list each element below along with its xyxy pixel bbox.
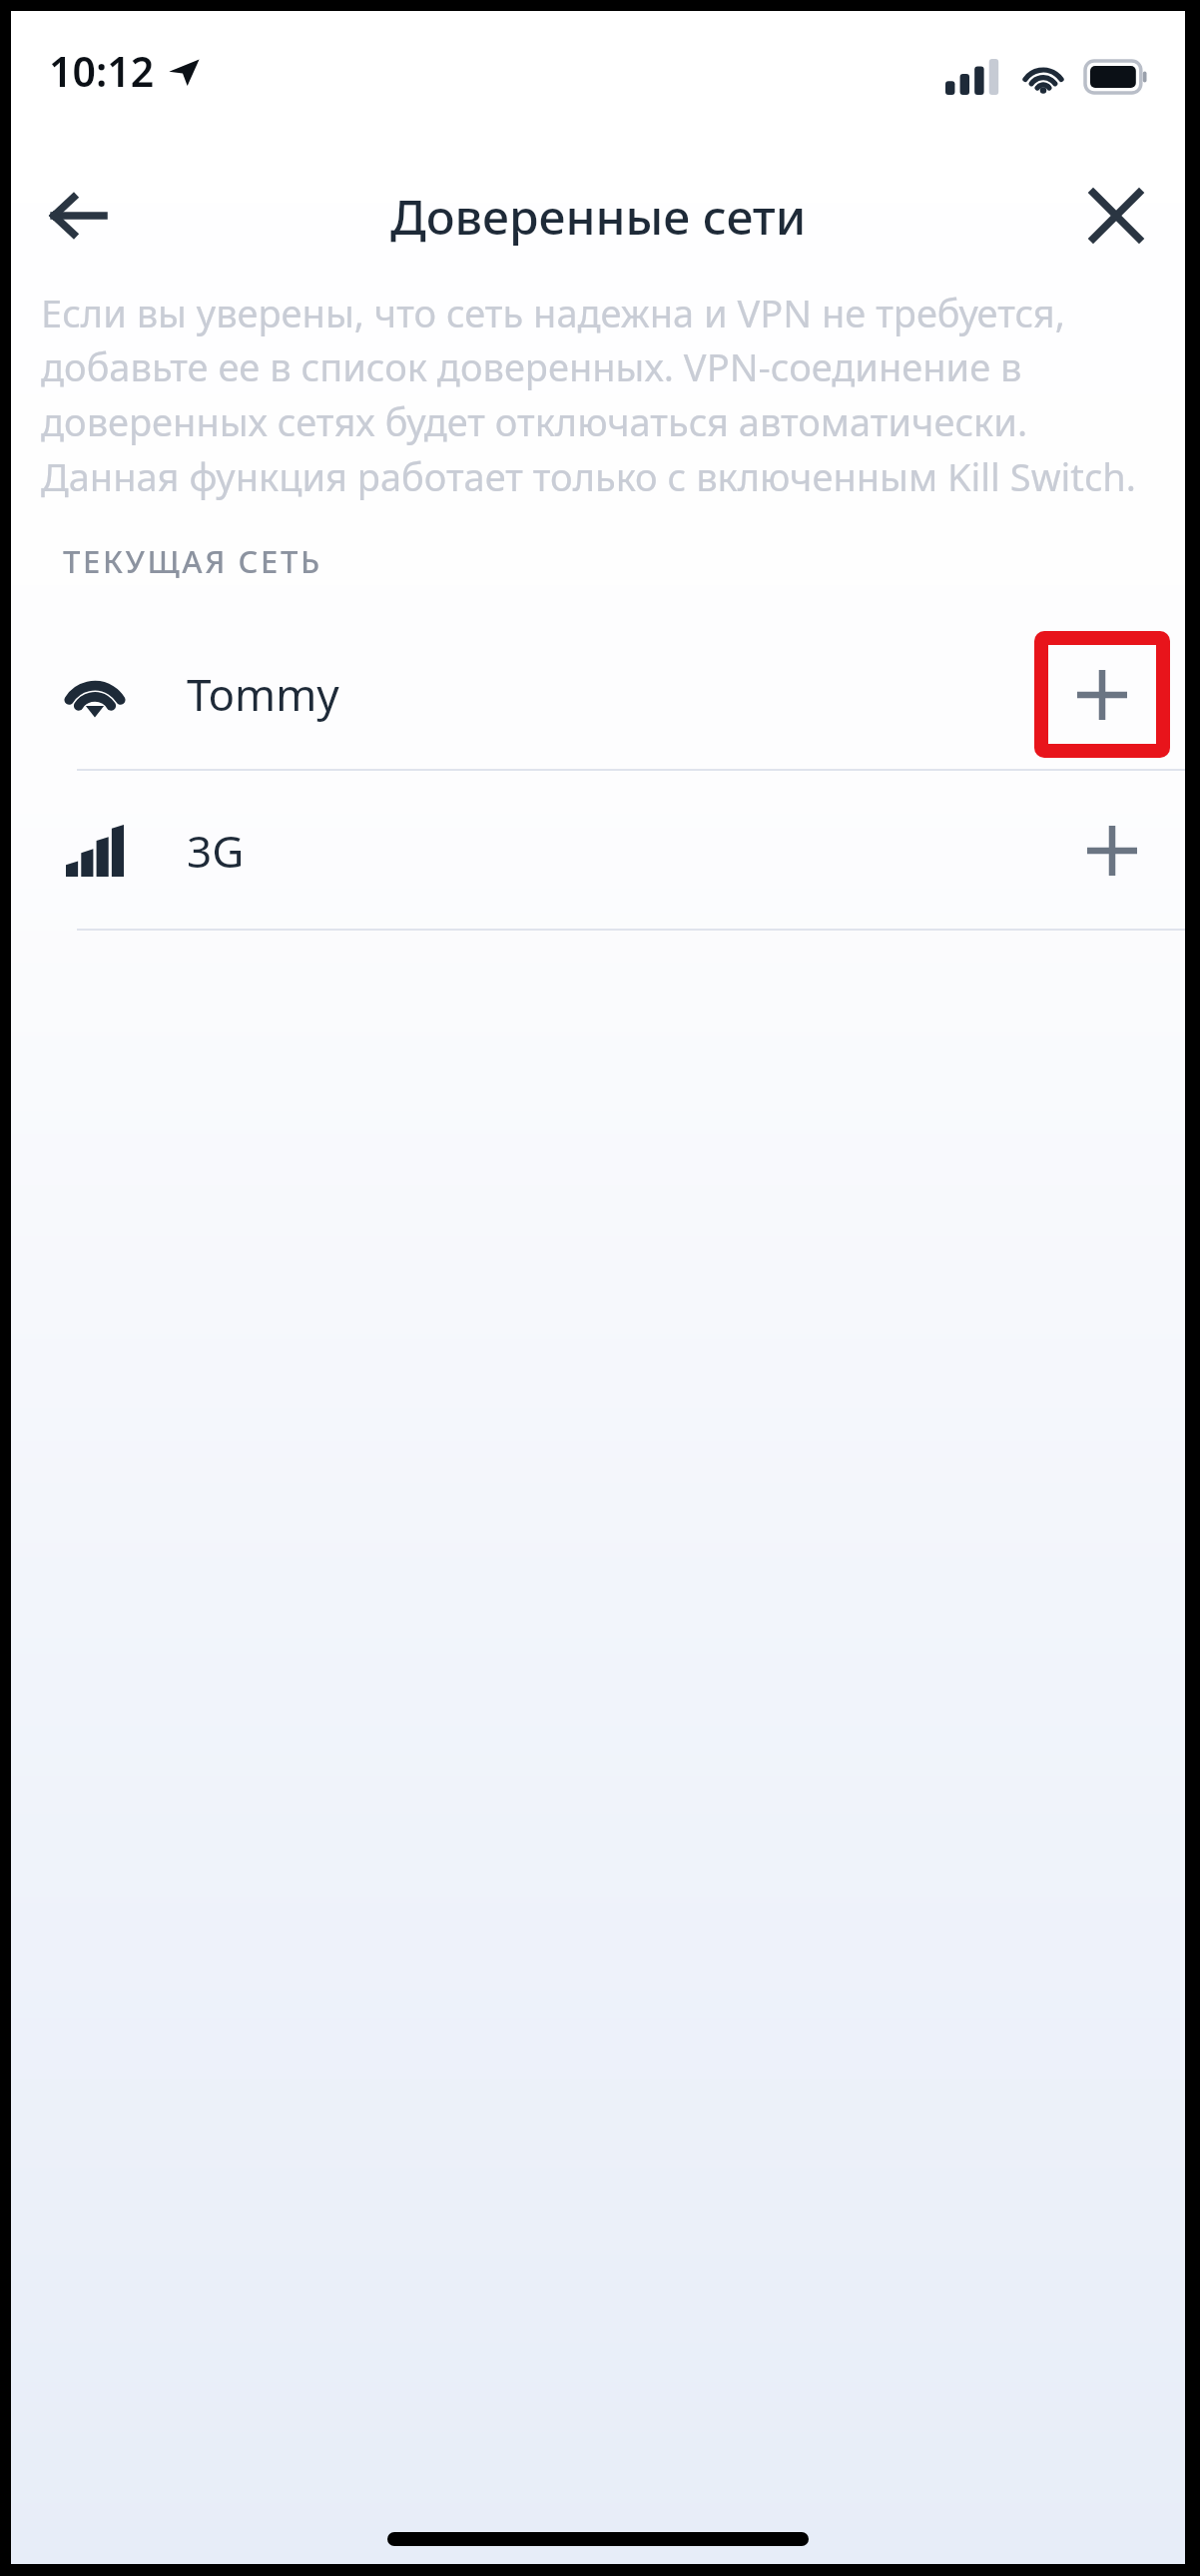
staticText: 10:12 [49, 43, 155, 99]
button[interactable]: Tommy [11, 618, 1185, 770]
staticText: 3G [187, 821, 245, 881]
staticText: Доверенные сети [390, 184, 807, 249]
button[interactable]: 3G [11, 771, 1185, 930]
button[interactable]: Back [23, 161, 133, 271]
staticText: Tommy [187, 664, 339, 724]
staticText: Если вы уверены, что сеть надежна и VPN … [41, 287, 1149, 502]
button[interactable]: Close [1063, 163, 1169, 269]
staticText: ТЕКУЩАЯ СЕТЬ [63, 540, 322, 582]
button[interactable]: Add Tommy to trusted networks [1048, 645, 1156, 744]
button[interactable]: Add 3G to trusted networks [1060, 799, 1164, 903]
